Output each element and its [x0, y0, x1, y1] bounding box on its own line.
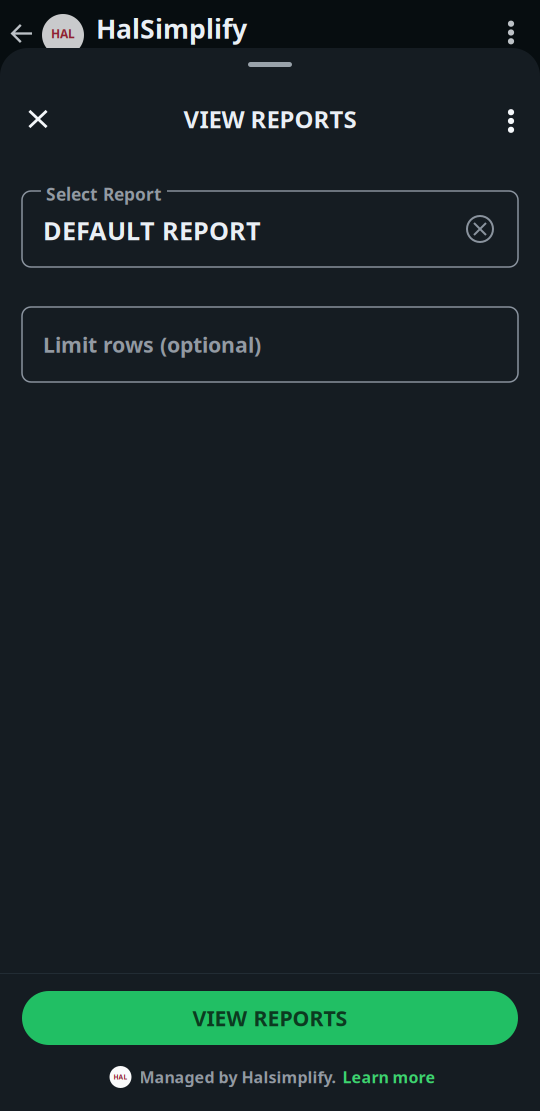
staticText: HAL — [113, 1073, 127, 1081]
staticText: Limit rows (optional) — [43, 330, 261, 359]
button[interactable]: Clear — [465, 214, 495, 244]
button[interactable]: VIEW REPORTS — [22, 991, 518, 1045]
button[interactable]: More options — [494, 95, 528, 143]
staticText: VIEW REPORTS — [183, 103, 356, 135]
staticText: Learn more — [342, 1066, 435, 1088]
staticText: HalSimplify — [96, 11, 247, 46]
staticText: Managed by Halsimplify. — [139, 1066, 335, 1088]
button[interactable]: Close — [14, 95, 62, 143]
staticText: DEFAULT REPORT — [43, 214, 261, 247]
button[interactable]: Learn more — [335, 1066, 435, 1088]
staticText: VIEW REPORTS — [192, 1004, 347, 1032]
button[interactable]: More options — [494, 0, 528, 48]
staticText: Select Report — [46, 182, 162, 205]
staticText: HAL — [51, 25, 75, 41]
button[interactable]: Back — [7, 0, 37, 48]
